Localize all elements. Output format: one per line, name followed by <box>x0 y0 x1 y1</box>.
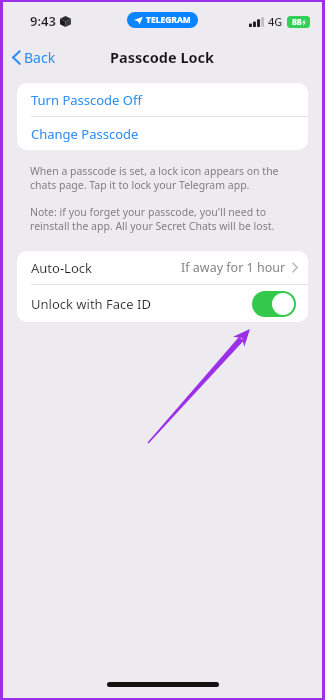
staticText: Turn Passcode Off <box>31 91 142 109</box>
button[interactable]: Unlock with Face ID toggle, on <box>252 291 296 317</box>
staticText: Passcode Lock <box>110 47 215 67</box>
staticText: If away for 1 hour <box>181 259 286 276</box>
staticText: 88 <box>292 16 302 28</box>
staticText: Change Passcode <box>31 125 139 143</box>
button[interactable]: Back <box>3 44 66 71</box>
staticText: 4G <box>268 14 283 29</box>
button[interactable]: Turn Passcode Off <box>17 83 308 116</box>
staticText: Note: if you forget your passcode, you'l… <box>30 205 295 233</box>
button[interactable]: Unlock with Face ID <box>17 285 308 322</box>
button[interactable]: Change Passcode <box>17 117 308 150</box>
staticText: TELEGRAM <box>146 14 191 26</box>
button[interactable]: Auto-Lock <box>17 251 308 284</box>
staticText: 9:43 <box>30 12 56 30</box>
staticText: Auto-Lock <box>31 259 92 277</box>
staticText: Unlock with Face ID <box>31 295 151 313</box>
staticText: Back <box>24 48 56 67</box>
staticText: When a passcode is set, a lock icon appe… <box>30 164 295 192</box>
